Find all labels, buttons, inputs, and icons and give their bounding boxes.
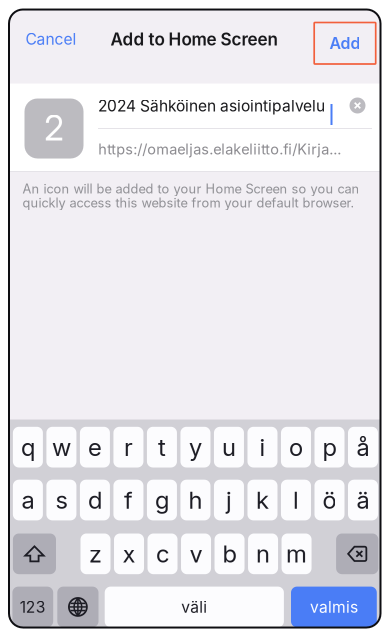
button[interactable]: h — [180, 480, 210, 520]
staticText: Cancel — [26, 30, 77, 48]
staticText: h — [188, 485, 202, 514]
button[interactable]: m — [282, 533, 312, 574]
staticText: valmis — [310, 597, 358, 616]
staticText: s — [55, 485, 67, 514]
button[interactable]: e — [80, 427, 110, 467]
staticText: j — [226, 485, 232, 514]
staticText: p — [322, 433, 336, 462]
button[interactable]: Delete — [336, 533, 378, 574]
button[interactable]: d — [80, 480, 110, 520]
button[interactable]: ä — [348, 480, 378, 520]
staticText: https://omaeljas.elakeliitto.fi/Kirja... — [98, 140, 341, 158]
button[interactable]: b — [214, 533, 244, 574]
button[interactable]: Add — [314, 22, 376, 64]
staticText: r — [124, 433, 133, 462]
button[interactable]: Shift — [13, 533, 56, 574]
staticText: a — [21, 485, 34, 514]
staticText: i — [259, 433, 265, 462]
button[interactable]: v — [181, 533, 211, 574]
staticText: d — [88, 485, 102, 514]
staticText: f — [124, 485, 133, 514]
button[interactable]: t — [147, 427, 177, 467]
button[interactable]: valmis — [291, 587, 377, 627]
staticText: u — [222, 433, 236, 462]
staticText: An icon will be added to your Home Scree… — [22, 181, 359, 196]
button[interactable]: https://omaeljas.elakeliitto.fi/Kirja... — [98, 134, 348, 164]
button[interactable]: w — [46, 427, 76, 467]
staticText: c — [156, 539, 169, 568]
button[interactable]: 123 — [12, 587, 53, 627]
staticText: b — [222, 539, 236, 568]
button[interactable]: s — [46, 480, 76, 520]
staticText: ö — [322, 485, 336, 514]
button[interactable]: x — [114, 533, 144, 574]
button[interactable]: f — [113, 480, 143, 520]
staticText: Add — [329, 34, 360, 53]
button[interactable]: l — [281, 480, 311, 520]
staticText: z — [89, 539, 102, 568]
staticText: väli — [181, 597, 207, 616]
staticText: y — [189, 433, 202, 462]
button[interactable]: y — [180, 427, 210, 467]
button[interactable]: i — [247, 427, 277, 467]
staticText: quickly access this website from your de… — [22, 195, 354, 210]
button[interactable]: u — [214, 427, 244, 467]
button[interactable]: Clear text — [349, 97, 365, 113]
staticText: k — [256, 485, 269, 514]
staticText: q — [21, 433, 35, 462]
button[interactable]: r — [113, 427, 143, 467]
button[interactable]: 2024 Sähköinen asiointipalvelu — [98, 90, 330, 122]
staticText: n — [256, 539, 270, 568]
staticText: 2024 Sähköinen asiointipalvelu — [98, 96, 325, 115]
button[interactable]: Next keyboard — [57, 587, 98, 627]
staticText: e — [88, 433, 102, 462]
staticText: w — [52, 433, 71, 462]
staticText: ä — [356, 485, 369, 514]
button[interactable]: o — [281, 427, 311, 467]
staticText: Add to Home Screen — [110, 29, 277, 49]
button[interactable]: n — [248, 533, 278, 574]
staticText: o — [289, 433, 303, 462]
staticText: g — [155, 485, 169, 514]
staticText: x — [122, 539, 135, 568]
staticText: 2 — [44, 107, 64, 149]
button[interactable]: j — [214, 480, 244, 520]
staticText: t — [158, 433, 166, 462]
staticText: m — [286, 539, 307, 568]
button[interactable]: a — [13, 480, 43, 520]
button[interactable]: ö — [314, 480, 344, 520]
staticText: v — [189, 539, 202, 568]
button[interactable]: q — [13, 427, 43, 467]
button[interactable]: k — [247, 480, 277, 520]
button[interactable]: c — [147, 533, 177, 574]
button[interactable]: å — [348, 427, 378, 467]
button[interactable]: g — [147, 480, 177, 520]
button[interactable]: p — [314, 427, 344, 467]
button[interactable]: väli — [105, 587, 284, 627]
staticText: å — [356, 433, 369, 462]
button[interactable]: Cancel — [26, 19, 100, 59]
staticText: 123 — [20, 597, 46, 616]
button[interactable]: z — [80, 533, 110, 574]
staticText: l — [293, 485, 299, 514]
